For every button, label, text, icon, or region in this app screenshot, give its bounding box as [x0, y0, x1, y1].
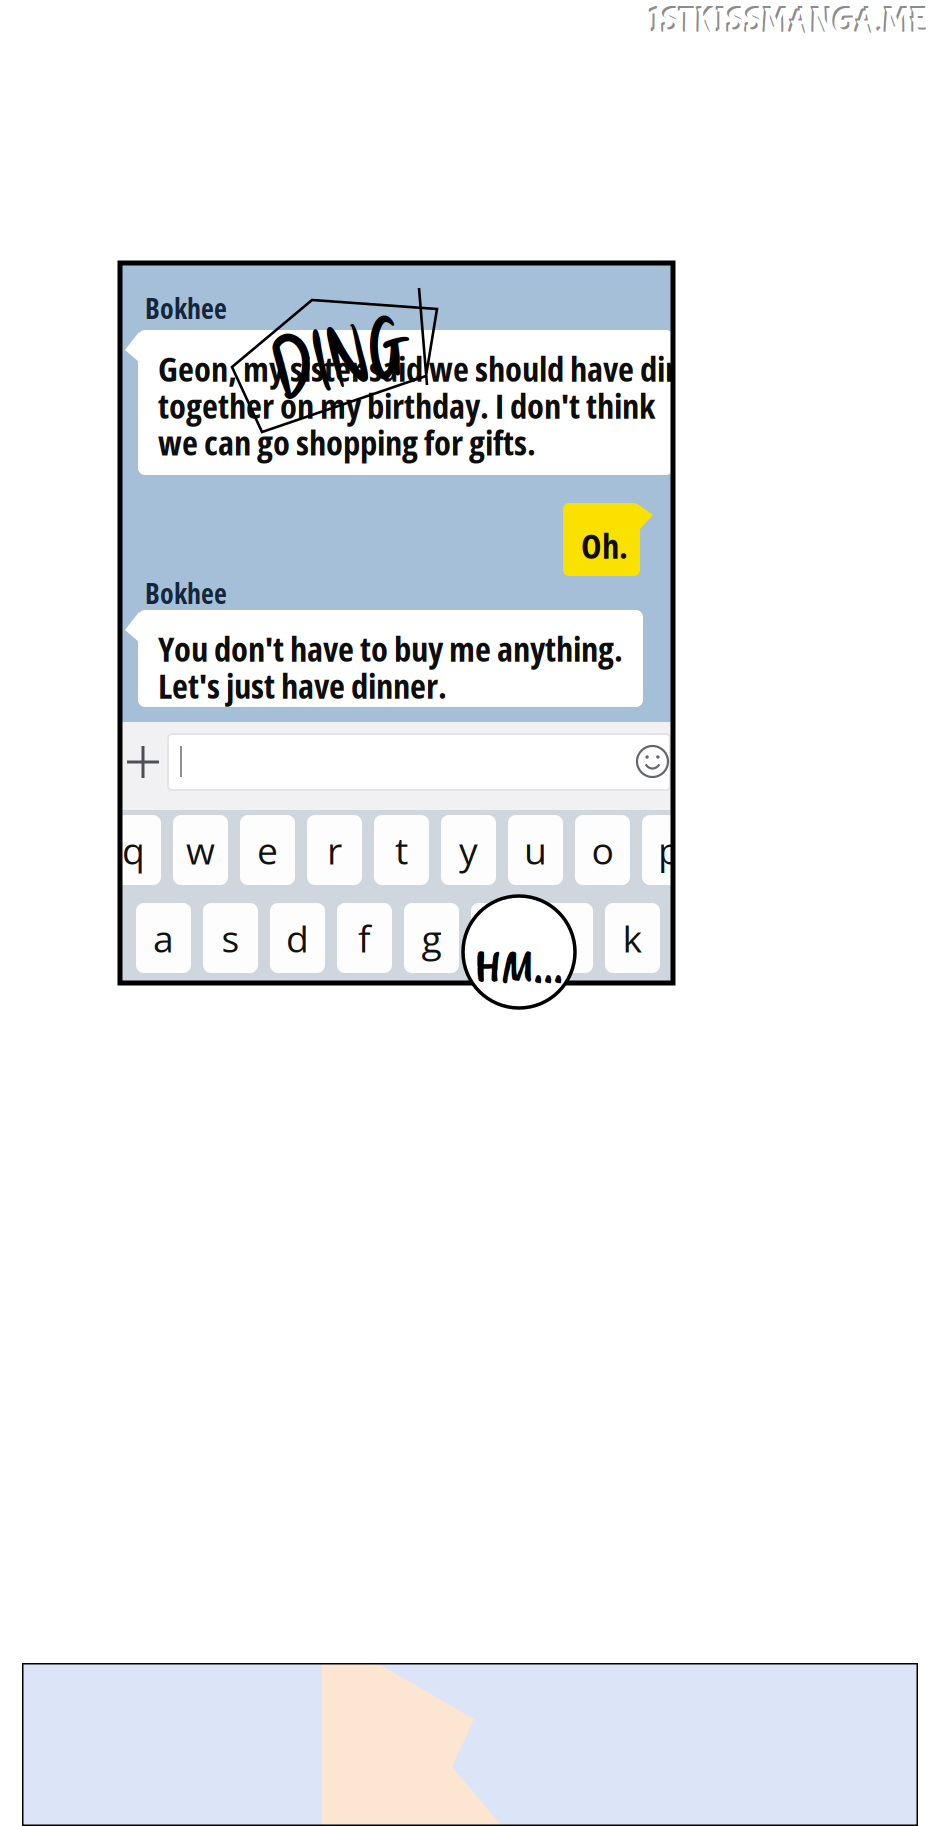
staticText: 1STKISSMANGA.ME [648, 0, 927, 42]
staticText: e [257, 825, 278, 875]
button[interactable]: a [136, 903, 191, 973]
staticText: g [421, 913, 441, 963]
button[interactable]: u [508, 815, 563, 885]
button[interactable]: s [203, 903, 258, 973]
button[interactable]: Emoji [629, 738, 676, 785]
button[interactable]: y [441, 815, 496, 885]
staticText: s [221, 913, 239, 963]
staticText: Oh. [581, 527, 628, 564]
staticText: Bokhee [145, 574, 227, 612]
button[interactable]: j [538, 903, 593, 973]
staticText: r [327, 825, 342, 875]
button[interactable]: w [173, 815, 228, 885]
staticText: d [286, 913, 309, 963]
staticText: u [524, 825, 547, 875]
staticText: q [122, 825, 145, 875]
button[interactable]: k [605, 903, 660, 973]
staticText: a [153, 913, 174, 963]
staticText: w [186, 825, 215, 875]
button[interactable]: h [471, 903, 526, 973]
staticText: HM... [474, 936, 563, 996]
button[interactable]: t [374, 815, 429, 885]
button[interactable]: f [337, 903, 392, 973]
staticText: 1STKISSMANGA.ME [650, 2, 929, 44]
staticText: h [487, 913, 510, 963]
button[interactable]: q [106, 815, 161, 885]
staticText: j [561, 913, 570, 963]
staticText: k [622, 913, 642, 963]
button[interactable]: e [240, 815, 295, 885]
button[interactable]: r [307, 815, 362, 885]
staticText: p [658, 825, 681, 875]
staticText: o [591, 825, 613, 875]
button[interactable]: o [575, 815, 630, 885]
staticText: Geon, my sister said we should have dinn… [158, 350, 727, 460]
staticText: t [395, 825, 408, 875]
button[interactable]: Add attachment [117, 736, 169, 788]
staticText: y [459, 825, 478, 875]
staticText: Bokhee [145, 289, 227, 327]
staticText: DING [272, 306, 410, 405]
button[interactable]: p [642, 815, 697, 885]
staticText: f [358, 913, 371, 963]
button[interactable]: g [404, 903, 459, 973]
button[interactable]: d [270, 903, 325, 973]
staticText: You don't have to buy me anything. Let's… [158, 630, 623, 704]
